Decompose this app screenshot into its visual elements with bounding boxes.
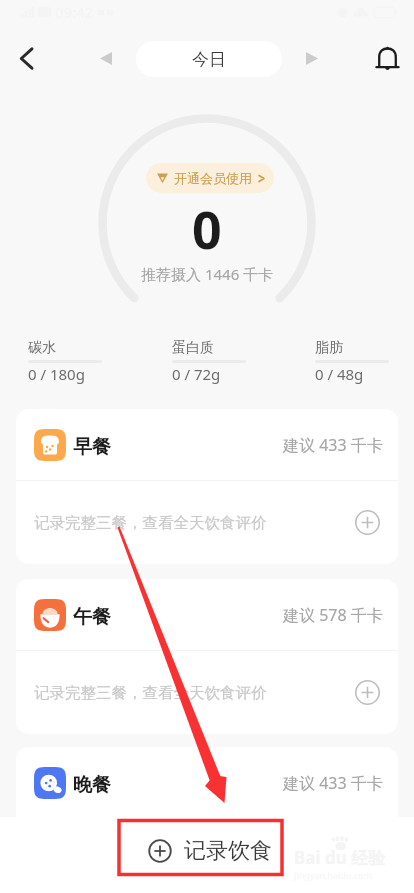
- button[interactable]: Previous day: [86, 38, 126, 78]
- staticText: 今日: [192, 49, 226, 70]
- button[interactable]: Add food: [355, 680, 380, 705]
- staticText: 0 / 48g: [315, 364, 364, 384]
- staticText: 记录饮食: [184, 837, 272, 865]
- button[interactable]: 午餐: [16, 579, 398, 734]
- button[interactable]: 今日: [136, 41, 282, 77]
- button[interactable]: Notifications: [367, 38, 407, 78]
- button[interactable]: Add food: [355, 848, 380, 873]
- button[interactable]: 开通会员使用: [146, 163, 274, 193]
- button[interactable]: 记录饮食: [148, 837, 272, 865]
- staticText: 记录完整三餐，查看全天饮食评价: [34, 513, 267, 533]
- button[interactable]: 早餐: [16, 409, 398, 564]
- staticText: 蛋白质: [172, 339, 214, 357]
- staticText: 建议 578 千卡: [283, 604, 383, 626]
- staticText: 推荐摄入 1446 千卡: [141, 264, 274, 284]
- button[interactable]: Add food: [355, 510, 380, 535]
- staticText: 早餐: [73, 435, 111, 459]
- button[interactable]: Next day: [292, 38, 332, 78]
- staticText: 脂肪: [315, 339, 343, 357]
- staticText: Bai du 经验: [294, 846, 386, 869]
- staticText: 午餐: [73, 605, 111, 629]
- button[interactable]: 晚餐: [16, 747, 398, 893]
- staticText: 碳水: [28, 339, 56, 357]
- staticText: 晚餐: [73, 773, 111, 797]
- staticText: 记录完整三餐，查看全天饮食评价: [34, 683, 267, 703]
- staticText: 0: [192, 193, 222, 264]
- staticText: jingyan.baidu.com: [294, 869, 372, 881]
- staticText: 0 / 180g: [28, 364, 85, 384]
- button[interactable]: Back: [6, 38, 46, 78]
- staticText: 记录完整三餐，查看全天饮食评价: [34, 851, 267, 871]
- staticText: 开通会员使用: [174, 170, 252, 186]
- staticText: 建议 433 千卡: [283, 434, 383, 456]
- staticText: 建议 433 千卡: [283, 772, 383, 794]
- staticText: 0 / 72g: [172, 364, 221, 384]
